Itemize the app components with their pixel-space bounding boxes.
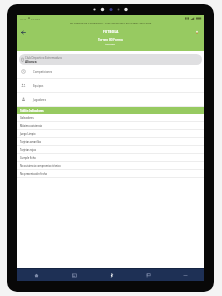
button[interactable]: No presentación fecha	[17, 170, 204, 177]
staticText: Máxima asistencia	[20, 124, 43, 127]
button[interactable]: Notifications	[192, 27, 201, 36]
staticText: Torneo 80 Forma	[98, 38, 123, 42]
staticText: MI TORNEO DE CATEGORIAS - LIGA MUNICIPAL…	[70, 22, 152, 25]
staticText: Tablón Indicadores	[20, 109, 44, 112]
button[interactable]: No asistencia compromiso técnico	[17, 162, 204, 169]
staticText: Tarjetas rojas	[20, 148, 36, 151]
staticText: Competiciones	[33, 70, 53, 74]
staticText: No presentación fecha	[20, 172, 47, 175]
staticText: Jugadores	[33, 98, 46, 102]
button[interactable]: Tarjetas amarillas	[17, 138, 204, 145]
staticText: Equipos	[33, 84, 44, 88]
staticText: Club Deportivo Extremadura	[25, 56, 62, 60]
staticText: Juego Limpio	[20, 132, 36, 135]
button[interactable]: Goleadores	[17, 114, 204, 121]
button[interactable]: Flag	[130, 269, 167, 281]
staticText: 0.0 KB/s	[31, 17, 41, 20]
button[interactable]: Competiciones	[17, 65, 204, 78]
button[interactable]: Tarjetas rojas	[17, 146, 204, 153]
button[interactable]: Juego Limpio	[17, 130, 204, 137]
button[interactable]: Back	[18, 27, 28, 37]
staticText: 10:14	[20, 17, 27, 20]
button[interactable]: Equipos	[17, 79, 204, 92]
staticText: No asistencia compromiso técnico	[20, 164, 61, 167]
button[interactable]: More	[167, 269, 204, 281]
staticText: FUTBOLA	[103, 30, 119, 34]
button[interactable]: Gallery	[55, 269, 93, 281]
button[interactable]: Cumple ficha	[17, 154, 204, 161]
staticText: Masculino	[105, 43, 116, 46]
button[interactable]: Home	[17, 269, 55, 281]
button[interactable]: Máxima asistencia	[17, 122, 204, 129]
button[interactable]: Club Deportivo Extremadura	[19, 54, 202, 65]
button[interactable]: Activity	[93, 269, 130, 281]
staticText: Goleadores	[20, 116, 34, 119]
button[interactable]: Jugadores	[17, 93, 204, 106]
staticText: Tarjetas amarillas	[20, 140, 42, 143]
staticText: Cumple ficha	[20, 156, 36, 159]
staticText: Alianza	[25, 60, 37, 64]
